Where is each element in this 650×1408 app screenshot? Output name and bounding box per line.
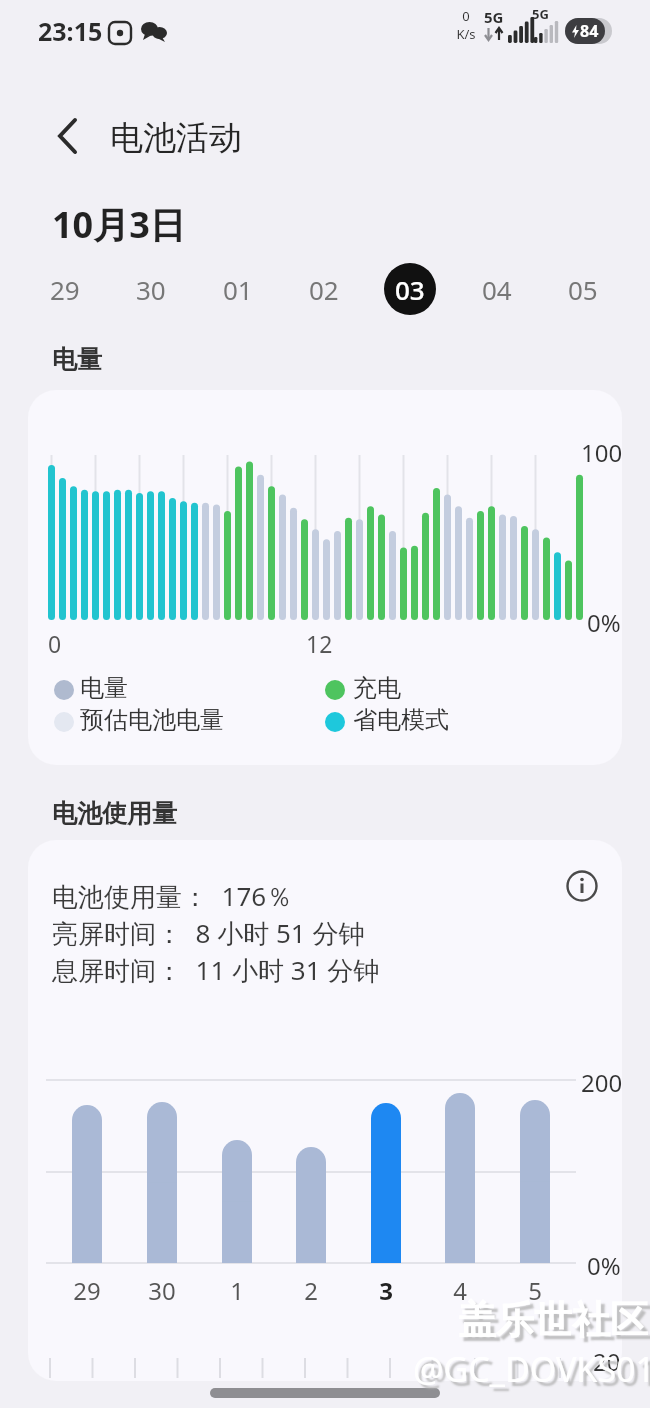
staticText: 5G (532, 5, 549, 23)
staticText: 电量 (80, 673, 128, 703)
staticText: 0% (587, 606, 621, 639)
staticText: 盖乐世社区 (458, 1296, 648, 1344)
staticText: 3 (361, 1274, 411, 1307)
staticText: 01 (223, 272, 253, 307)
staticText: 5 (510, 1274, 560, 1307)
staticText: 200 (581, 1066, 622, 1099)
staticText: 预估电池电量 (80, 705, 224, 735)
button[interactable]: 05 (557, 263, 609, 315)
staticText: 2 (286, 1274, 336, 1307)
staticText: 5G (484, 7, 504, 27)
staticText: 亮屏时间： 8 小时 51 分钟 (52, 915, 365, 951)
staticText: 0% (587, 1249, 621, 1282)
staticText: 04 (482, 272, 512, 307)
staticText: 4 (435, 1274, 485, 1307)
staticText: @GC_DOVKS01 (413, 1346, 650, 1392)
staticText: 20 (593, 1345, 621, 1378)
staticText: 省电模式 (353, 705, 449, 735)
staticText: 30 (137, 1274, 187, 1307)
staticText: 电池活动 (110, 117, 242, 159)
staticText: 12 (306, 628, 333, 659)
button[interactable]: 29 (39, 263, 91, 315)
staticText: 0 (48, 628, 62, 659)
button[interactable]: 03 (384, 263, 436, 315)
button[interactable]: 01 (212, 263, 264, 315)
staticText: 30 (136, 272, 166, 307)
staticText: 充电 (353, 673, 401, 703)
staticText: 23:15 (38, 14, 103, 48)
staticText: 02 (309, 272, 339, 307)
staticText: 05 (568, 272, 598, 307)
staticText: 29 (50, 272, 80, 307)
staticText: 03 (395, 272, 425, 307)
staticText: 息屏时间： 11 小时 31 分钟 (52, 952, 380, 988)
button[interactable] (40, 108, 96, 164)
staticText: 100 (581, 436, 622, 469)
staticText: 29 (62, 1274, 112, 1307)
staticText: 84 (580, 20, 599, 42)
staticText: 电池使用量 (52, 798, 177, 829)
staticText: K/s (448, 25, 484, 43)
button[interactable]: 04 (471, 263, 523, 315)
button[interactable]: 02 (298, 263, 350, 315)
staticText: 1 (212, 1274, 262, 1307)
staticText: 电量 (52, 344, 102, 375)
button[interactable]: 30 (125, 263, 177, 315)
button[interactable] (564, 868, 600, 904)
staticText: 0 (454, 7, 478, 25)
staticText: 电池使用量： 176％ (52, 878, 293, 914)
staticText: 10月3日 (52, 200, 186, 249)
